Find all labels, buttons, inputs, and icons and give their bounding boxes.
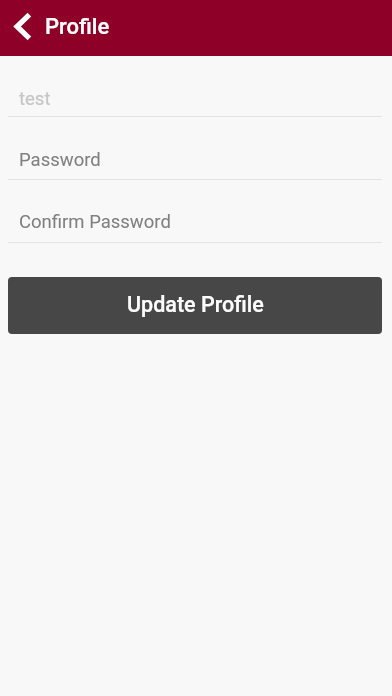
staticText: Update Profile — [127, 292, 264, 317]
button[interactable]: Update Profile — [8, 277, 382, 334]
button[interactable]: test — [0, 61, 392, 116]
staticText: Password — [19, 149, 101, 171]
button[interactable]: Password — [0, 117, 392, 179]
staticText: Profile — [45, 14, 110, 40]
staticText: Confirm Password — [19, 211, 171, 233]
staticText: test — [19, 88, 51, 110]
button[interactable]: Confirm Password — [0, 180, 392, 242]
button[interactable]: Back — [2, 0, 44, 52]
